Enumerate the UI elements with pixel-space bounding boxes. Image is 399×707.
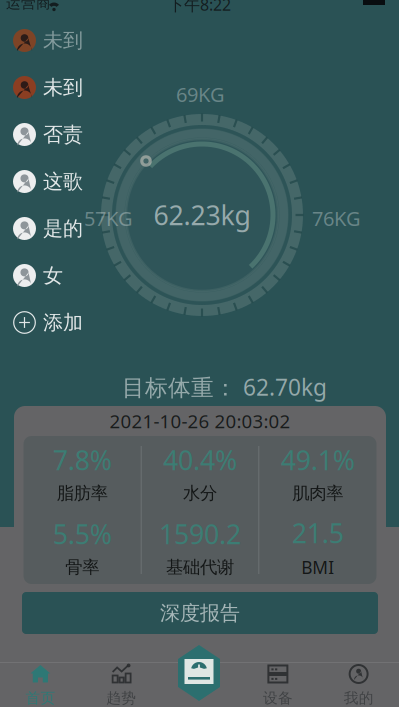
staticText: 水分 <box>183 483 217 504</box>
button[interactable]: 女 <box>0 252 110 299</box>
staticText: 未到 <box>43 28 83 53</box>
staticText: 运营商 <box>6 0 51 12</box>
staticText: 76KG <box>312 205 361 232</box>
button[interactable]: 深度报告 <box>22 592 378 634</box>
staticText: 否责 <box>43 122 83 147</box>
button[interactable]: 添加 <box>0 299 110 346</box>
staticText: 57KG <box>84 205 133 232</box>
staticText: 40.4% <box>163 442 237 477</box>
staticText: 这歌 <box>43 169 83 194</box>
button[interactable]: 测量 <box>174 645 224 701</box>
button[interactable]: 首页 <box>0 663 81 707</box>
staticText: 2021-10-26 20:03:02 <box>109 409 290 433</box>
staticText: 肌肉率 <box>292 483 343 504</box>
staticText: 脂肪率 <box>57 483 108 504</box>
staticText: 首页 <box>25 689 55 707</box>
staticText: 1590.2 <box>159 516 241 551</box>
staticText: 7.8% <box>53 442 112 477</box>
staticText: 49.1% <box>281 442 355 477</box>
staticText: 趋势 <box>106 689 136 707</box>
button[interactable]: 设备 <box>237 663 318 707</box>
button[interactable]: 趋势 <box>81 663 162 707</box>
button[interactable]: 这歌 <box>0 158 110 205</box>
staticText: 5.5% <box>53 516 112 551</box>
button[interactable]: 否责 <box>0 111 110 158</box>
staticText: 我的 <box>344 689 374 707</box>
staticText: 69KG <box>176 81 225 108</box>
staticText: 未到 <box>43 75 83 100</box>
staticText: 是的 <box>43 216 83 241</box>
staticText: 基础代谢 <box>166 557 234 578</box>
button[interactable]: 是的 <box>0 205 110 252</box>
staticText: 添加 <box>43 310 83 335</box>
staticText: 女 <box>43 263 63 288</box>
staticText: BMI <box>301 556 334 579</box>
button[interactable]: 未到 <box>0 17 110 64</box>
button[interactable]: 未到 <box>0 64 110 111</box>
staticText: 骨率 <box>65 557 99 578</box>
staticText: 设备 <box>263 689 293 707</box>
staticText: 下午8:22 <box>168 0 231 15</box>
staticText: 62.23kg <box>153 197 250 233</box>
staticText: 21.5 <box>292 515 344 551</box>
staticText: 目标体重： 62.70kg <box>122 372 327 402</box>
staticText: 深度报告 <box>160 601 240 625</box>
button[interactable]: 我的 <box>318 663 399 707</box>
